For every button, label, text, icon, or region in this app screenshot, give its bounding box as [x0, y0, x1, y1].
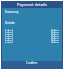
staticText: Confirm: [26, 61, 38, 65]
staticText: Value: [51, 39, 59, 41]
staticText: Summary: [5, 10, 19, 14]
staticText: Label: [5, 33, 13, 35]
staticText: Label: [5, 29, 13, 31]
staticText: Value: [51, 37, 59, 39]
staticText: Label: [5, 35, 13, 37]
staticText: Label: [5, 37, 13, 39]
staticText: Label: [5, 31, 13, 33]
staticText: Value: [51, 31, 59, 33]
staticText: Label: [5, 39, 13, 41]
staticText: Value: [51, 29, 59, 31]
staticText: Payment details: [17, 2, 48, 7]
staticText: Details: [5, 21, 15, 25]
staticText: Value: [51, 41, 59, 43]
staticText: Value: [51, 33, 59, 35]
staticText: Value: [51, 35, 59, 37]
staticText: Label: [5, 41, 13, 43]
